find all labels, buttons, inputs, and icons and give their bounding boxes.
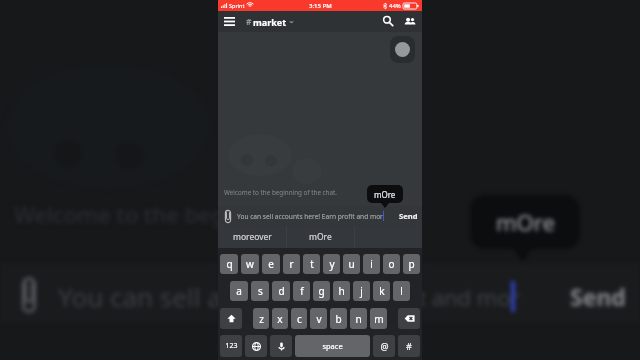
staticText: p [408,257,415,271]
button[interactable]: @ [373,335,395,357]
staticText: b [335,312,342,326]
staticText: u [348,257,355,271]
staticText: space [322,341,343,351]
button[interactable]: Search [379,11,397,32]
button[interactable]: c [291,308,307,329]
staticText: You can sell acco [58,279,263,314]
staticText: x [277,312,283,326]
button[interactable]: w [241,254,259,274]
staticText: Send [399,211,418,221]
staticText: i [370,257,373,271]
staticText: y [329,257,335,271]
button[interactable]: Attach file [225,206,231,226]
button[interactable]: h [333,281,350,301]
staticText: c [297,312,302,326]
staticText: n [355,312,362,326]
button[interactable]: t [303,254,320,274]
staticText: 44% [389,2,401,10]
button[interactable]: q [220,254,238,274]
staticText: # [406,340,412,352]
staticText: m [374,312,384,326]
button[interactable]: a [230,281,248,301]
staticText: k [379,284,385,298]
button[interactable]: x [272,308,288,329]
staticText: j [360,284,363,298]
button[interactable]: n [350,308,367,329]
staticText: mOre [374,189,396,200]
button[interactable]: space [295,335,370,357]
button[interactable]: globe [245,335,267,357]
staticText: Welcome to the beginni [14,199,264,229]
button[interactable]: shift [220,308,242,329]
button[interactable]: moreover [218,226,286,248]
button[interactable]: mic [270,335,292,357]
button[interactable]: Members [401,11,419,32]
button[interactable]: Open navigation menu [222,11,237,32]
staticText: r [289,257,294,271]
button[interactable]: z [253,308,269,329]
staticText: # [246,16,252,28]
staticText: g [318,284,325,298]
button[interactable]: k [373,281,390,301]
staticText: f [300,284,304,298]
button[interactable]: mOre [287,226,354,248]
staticText: q [226,257,233,271]
button[interactable]: m [370,308,387,329]
button[interactable]: p [403,254,420,274]
button[interactable]: 123 [220,335,242,357]
staticText: Welcome to the beginning of the chat. [224,188,337,197]
staticText: a [236,284,242,298]
staticText: w [246,257,254,271]
staticText: mOre [309,231,332,243]
button[interactable]: e [262,254,280,274]
button[interactable]: Screen record [390,36,415,63]
button[interactable]: l [393,281,410,301]
staticText: l [400,284,403,298]
button[interactable]: backspace [398,308,420,329]
staticText: You can sell accounts here! Earn profit … [237,212,383,221]
button[interactable]: j [353,281,370,301]
button[interactable]: o [383,254,400,274]
staticText: o [388,257,395,271]
button[interactable]: r [283,254,300,274]
staticText: market [253,16,287,28]
staticText: t [310,257,314,271]
button[interactable]: u [343,254,360,274]
staticText: 3:15 PM [309,2,332,10]
staticText: z [259,312,264,326]
staticText: mOre [496,207,555,237]
button[interactable]: f [293,281,310,301]
staticText: v [316,312,322,326]
staticText: t and mor [418,282,520,312]
button[interactable]: s [251,281,269,301]
button[interactable]: # [398,335,420,357]
staticText: s [258,284,263,298]
staticText: Send [570,281,626,312]
staticText: @ [380,340,389,352]
button[interactable]: g [313,281,330,301]
button[interactable]: Send [394,206,422,226]
staticText: moreover [233,231,272,243]
button[interactable]: y [323,254,340,274]
button[interactable]: v [310,308,327,329]
staticText: Sprint [229,2,245,9]
button[interactable]: i [363,254,380,274]
staticText: h [338,284,345,298]
button[interactable]: # [246,11,294,32]
staticText: e [268,257,274,271]
staticText: d [278,284,285,298]
button[interactable]: b [330,308,347,329]
staticText: 123 [225,341,238,351]
button[interactable]: d [272,281,290,301]
